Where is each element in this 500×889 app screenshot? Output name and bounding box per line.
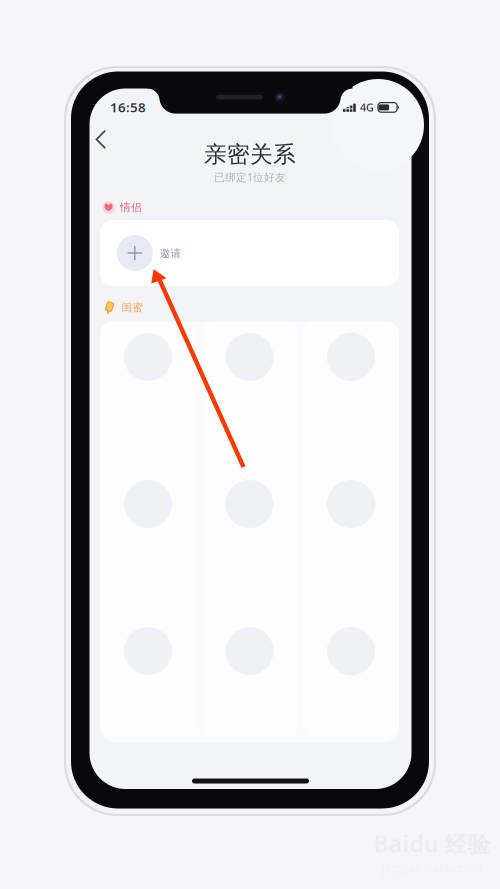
button[interactable]: 邀请: [100, 220, 399, 286]
staticText: 邀请: [159, 247, 181, 260]
staticText: 16:58: [110, 98, 146, 116]
staticText: 4G: [360, 100, 374, 114]
staticText: Baidu 经验: [373, 828, 490, 859]
staticText: 亲密关系: [204, 141, 296, 168]
staticText: 已绑定1位好友: [214, 170, 286, 184]
staticText: 情侣: [120, 201, 142, 214]
button[interactable]: Back: [81, 120, 121, 160]
staticText: 闺蜜: [121, 301, 143, 314]
